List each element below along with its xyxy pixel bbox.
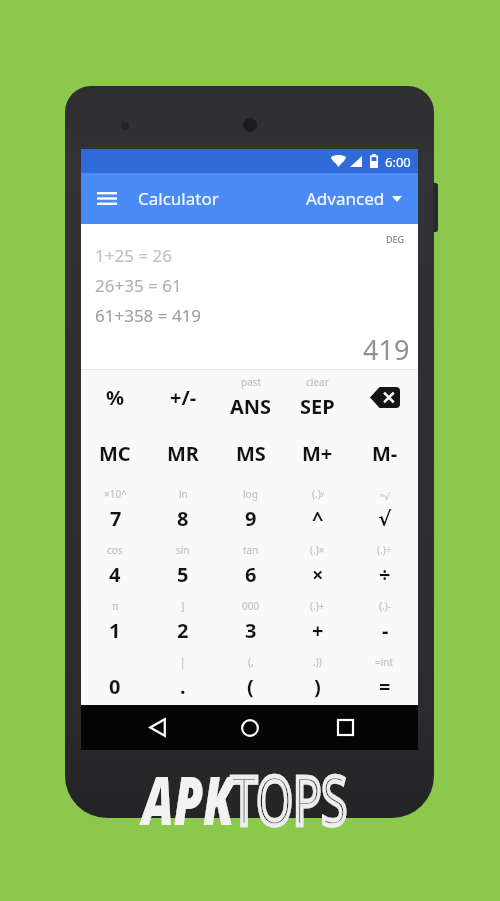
staticText: 3: [245, 617, 257, 644]
button[interactable]: log: [217, 481, 284, 537]
button[interactable]: Recents: [321, 705, 369, 750]
staticText: cos: [107, 543, 123, 557]
staticText: 6: [245, 561, 257, 588]
staticText: Advanced: [306, 187, 385, 210]
button[interactable]: tan: [217, 537, 284, 593]
staticText: ): [314, 673, 321, 700]
staticText: past: [241, 375, 262, 389]
button[interactable]: ×10^: [81, 481, 149, 537]
staticText: ⁿ√: [380, 489, 391, 503]
staticText: (.)×: [310, 543, 325, 557]
button[interactable]: (,: [217, 649, 284, 705]
staticText: |: [180, 655, 186, 669]
staticText: 000: [242, 599, 260, 613]
staticText: +: [312, 617, 324, 644]
staticText: (,: [248, 655, 254, 669]
staticText: (.)+: [310, 599, 325, 613]
staticText: M-: [372, 440, 398, 467]
button[interactable]: M-: [351, 425, 418, 481]
staticText: .)): [313, 655, 322, 669]
button[interactable]: M+: [284, 425, 351, 481]
staticText: 61+358 = 419: [95, 304, 202, 327]
staticText: MS: [236, 440, 266, 467]
staticText: MC: [99, 440, 131, 467]
button[interactable]: 0: [81, 649, 149, 705]
button[interactable]: clear: [284, 370, 351, 425]
staticText: DEG: [386, 233, 405, 245]
staticText: SEP: [300, 393, 335, 420]
staticText: tan: [243, 543, 259, 557]
staticText: π: [112, 599, 119, 613]
button[interactable]: 000: [217, 593, 284, 649]
button[interactable]: sin: [149, 537, 217, 593]
button[interactable]: +/-: [149, 370, 217, 425]
button[interactable]: Menu: [81, 173, 133, 224]
staticText: 5: [177, 561, 189, 588]
button[interactable]: Back: [133, 705, 181, 750]
staticText: (.)ʸ: [312, 487, 324, 501]
staticText: ^: [312, 505, 324, 532]
staticText: MR: [167, 440, 199, 467]
staticText: ln: [179, 487, 188, 501]
button[interactable]: (.)×: [284, 537, 351, 593]
staticText: 26+35 = 61: [95, 274, 182, 297]
staticText: =int: [375, 655, 394, 669]
staticText: 1+25 = 26: [95, 244, 172, 267]
button[interactable]: MS: [217, 425, 284, 481]
staticText: ]: [181, 599, 185, 613]
staticText: -: [382, 617, 389, 644]
button[interactable]: (.)-: [351, 593, 418, 649]
button[interactable]: (.)÷: [351, 537, 418, 593]
button[interactable]: |: [149, 649, 217, 705]
staticText: ×10^: [104, 487, 127, 501]
staticText: 419: [363, 331, 410, 368]
staticText: 1: [109, 617, 121, 644]
button[interactable]: Backspace: [351, 370, 418, 425]
staticText: .: [180, 673, 186, 700]
staticText: clear: [306, 375, 329, 389]
staticText: Calculator: [138, 187, 219, 210]
staticText: log: [243, 487, 258, 501]
button[interactable]: .)): [284, 649, 351, 705]
staticText: √: [378, 507, 392, 530]
staticText: (.)÷: [377, 543, 392, 557]
button[interactable]: ⁿ√: [351, 481, 418, 537]
button[interactable]: =int: [351, 649, 418, 705]
button[interactable]: Home: [226, 705, 274, 750]
button[interactable]: π: [81, 593, 149, 649]
button[interactable]: cos: [81, 537, 149, 593]
button[interactable]: MC: [81, 425, 149, 481]
staticText: +/-: [170, 384, 197, 411]
staticText: (.)-: [379, 599, 391, 613]
staticText: 6:00: [385, 153, 411, 171]
button[interactable]: (.)+: [284, 593, 351, 649]
button[interactable]: (.)ʸ: [284, 481, 351, 537]
staticText: 8: [177, 505, 189, 532]
staticText: M+: [302, 440, 333, 467]
staticText: (: [247, 673, 254, 700]
button[interactable]: ln: [149, 481, 217, 537]
staticText: ×: [312, 561, 324, 588]
button[interactable]: ]: [149, 593, 217, 649]
other: Backspace: [370, 387, 400, 408]
staticText: 0: [109, 673, 121, 700]
button[interactable]: past: [217, 370, 284, 425]
staticText: 7: [110, 505, 122, 532]
staticText: %: [106, 384, 125, 411]
staticText: 4: [109, 561, 121, 588]
button[interactable]: MR: [149, 425, 217, 481]
staticText: 9: [245, 505, 257, 532]
button[interactable]: %: [81, 370, 149, 425]
staticText: sin: [176, 543, 190, 557]
button[interactable]: Advanced: [306, 173, 418, 224]
staticText: ANS: [230, 393, 272, 420]
staticText: ÷: [379, 561, 391, 588]
staticText: =: [379, 673, 391, 700]
staticText: 2: [177, 617, 189, 644]
